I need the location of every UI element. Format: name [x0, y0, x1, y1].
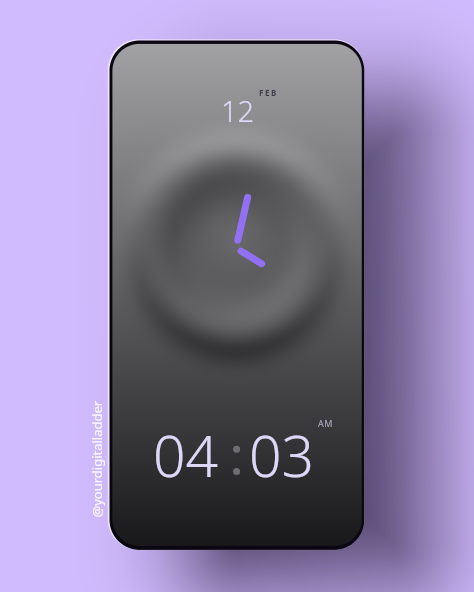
staticText: @yourdigitalladder: [87, 400, 105, 517]
staticText: AM: [318, 417, 333, 429]
button[interactable]: 12: [112, 44, 362, 546]
staticText: 04: [153, 416, 219, 494]
staticText: FEB: [259, 87, 278, 98]
button[interactable]: @yourdigitalladder: [87, 400, 105, 517]
staticText: 12: [221, 91, 255, 130]
staticText: 03: [249, 416, 315, 494]
